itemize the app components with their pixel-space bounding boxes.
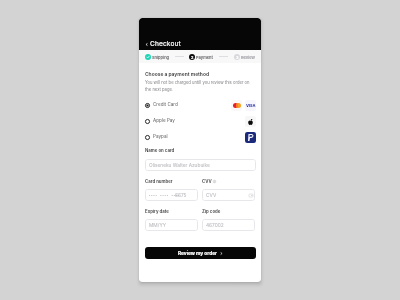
staticText: Zip code (202, 209, 221, 214)
other: Back (145, 43, 148, 46)
button[interactable]: 6675 (145, 189, 198, 201)
staticText: 467002 (206, 222, 224, 228)
staticText: 3 (236, 55, 239, 60)
staticText: Oliseneku Walter Azubuike (149, 162, 210, 168)
button[interactable]: Review my order (145, 247, 256, 259)
staticText: Expiry date (145, 209, 169, 214)
staticText: Choose a payment method (145, 71, 209, 77)
button[interactable]: Visa (245, 100, 256, 111)
staticText: MM/YY (149, 222, 166, 228)
staticText: VISA (246, 103, 256, 108)
button[interactable]: Mastercard (231, 100, 242, 111)
other: CVV location (249, 194, 253, 197)
staticText: Credit Card (153, 102, 178, 108)
staticText: Review (241, 55, 255, 60)
button[interactable]: Apple Pay (245, 116, 256, 127)
button[interactable]: Back (144, 39, 182, 49)
button[interactable]: 467002 (202, 219, 255, 231)
staticText: 2 (191, 55, 194, 60)
staticText: CVV (202, 179, 212, 184)
staticText: Apple Pay (153, 118, 175, 124)
button[interactable]: Oliseneku Walter Azubuike (145, 159, 256, 171)
staticText: Paypal (153, 134, 168, 140)
button[interactable]: Shipping (145, 54, 170, 60)
staticText: Checkout (150, 40, 181, 48)
staticText: Name on card (145, 148, 175, 153)
button[interactable]: Paypal (245, 132, 256, 143)
staticText: Card number (145, 179, 173, 184)
staticText: CVV (206, 192, 217, 198)
staticText: 6675 (175, 192, 187, 198)
staticText: You will not be charged untill you revie… (145, 80, 256, 92)
button[interactable]: 2 (189, 54, 213, 60)
staticText: Shipping (152, 55, 170, 60)
button[interactable]: 3 (234, 54, 255, 60)
button[interactable]: Paypal (145, 129, 256, 145)
button[interactable]: Credit Card (145, 97, 256, 113)
button[interactable]: Apple Pay (145, 113, 256, 129)
staticText: Payment (196, 55, 213, 60)
button[interactable]: MM/YY (145, 219, 198, 231)
staticText: Review my order (178, 250, 217, 256)
button[interactable]: CVV (202, 189, 255, 201)
